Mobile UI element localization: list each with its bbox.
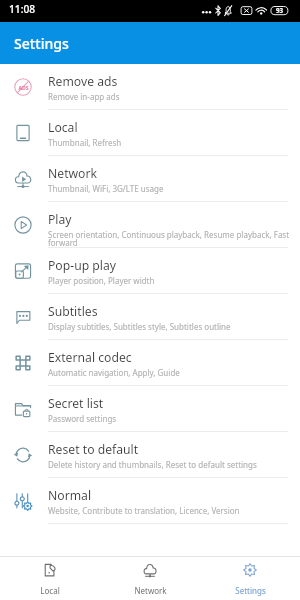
button[interactable]: Local bbox=[0, 110, 300, 156]
staticText: Subtitles bbox=[48, 303, 98, 320]
staticText: Settings bbox=[235, 585, 266, 596]
button[interactable]: Settings bbox=[200, 557, 300, 600]
button[interactable]: External codec bbox=[0, 340, 300, 386]
staticText: Remove ads bbox=[48, 73, 118, 90]
staticText: Secret list bbox=[48, 395, 104, 412]
button[interactable]: ADS bbox=[0, 64, 300, 110]
staticText: Network bbox=[134, 585, 167, 596]
button[interactable]: Pop-up play bbox=[0, 248, 300, 294]
staticText: Website, Contribute to translation, Lice… bbox=[48, 505, 240, 516]
staticText: Reset to default bbox=[48, 441, 139, 458]
button[interactable]: Network bbox=[0, 156, 300, 202]
staticText: Delete history and thumbnails, Reset to … bbox=[48, 459, 257, 470]
staticText: Remove in-app ads bbox=[48, 91, 120, 102]
staticText: Screen orientation, Continuous playback,… bbox=[48, 229, 291, 248]
staticText: Network bbox=[48, 165, 98, 182]
staticText: Thumbnail, Refresh bbox=[48, 137, 122, 148]
button[interactable]: Local bbox=[0, 557, 100, 600]
staticText: Normal bbox=[48, 487, 92, 504]
staticText: External codec bbox=[48, 349, 132, 366]
staticText: Player position, Player width bbox=[48, 275, 155, 286]
staticText: Local bbox=[40, 585, 60, 596]
button[interactable]: Reset to default bbox=[0, 432, 300, 478]
staticText: Pop-up play bbox=[48, 257, 117, 274]
staticText: Local bbox=[48, 119, 78, 136]
staticText: Display subtitles, Subtitles style, Subt… bbox=[48, 321, 231, 332]
staticText: Settings bbox=[14, 34, 69, 53]
staticText: 93 bbox=[276, 6, 284, 14]
button[interactable]: Secret list bbox=[0, 386, 300, 432]
staticText: Play bbox=[48, 211, 72, 228]
staticText: Automatic navigation, Apply, Guide bbox=[48, 367, 180, 378]
button[interactable]: Network bbox=[100, 557, 200, 600]
staticText: ADS bbox=[18, 84, 29, 91]
button[interactable]: Normal bbox=[0, 478, 300, 524]
button[interactable]: Play bbox=[0, 202, 300, 248]
staticText: Thumbnail, WiFi, 3G/LTE usage bbox=[48, 183, 164, 194]
staticText: 11:08 bbox=[9, 2, 36, 16]
button[interactable]: Subtitles bbox=[0, 294, 300, 340]
staticText: Password settings bbox=[48, 413, 117, 424]
